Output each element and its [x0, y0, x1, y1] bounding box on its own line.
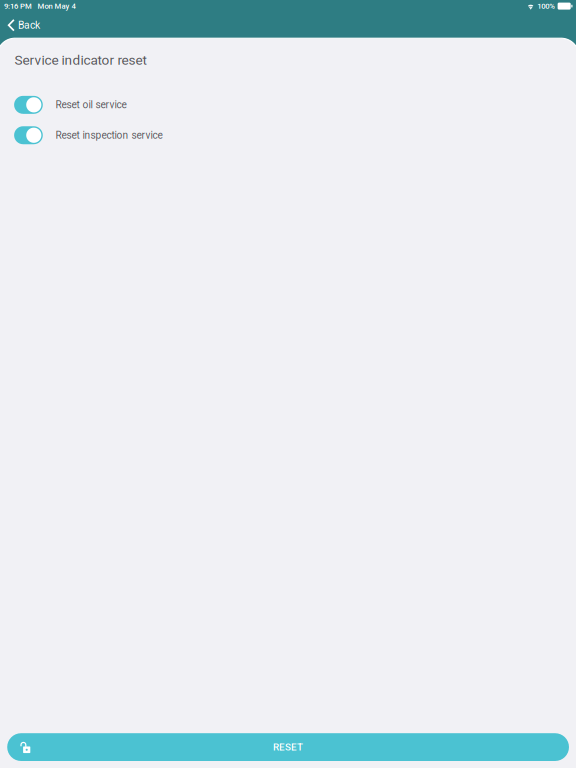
staticText: Reset oil service: [55, 99, 126, 111]
staticText: RESET: [273, 741, 303, 753]
staticText: Back: [18, 19, 40, 31]
staticText: 100%: [537, 2, 555, 11]
staticText: Mon May 4: [37, 2, 75, 11]
button[interactable]: Reset oil service: [0, 90, 576, 120]
button[interactable]: Reset: [0, 733, 576, 768]
staticText: Service indicator reset: [14, 52, 146, 68]
button[interactable]: Reset inspection service: [0, 120, 576, 150]
staticText: Reset inspection service: [55, 129, 162, 141]
button[interactable]: Back: [0, 12, 52, 38]
staticText: 9:16 PM: [4, 2, 32, 11]
